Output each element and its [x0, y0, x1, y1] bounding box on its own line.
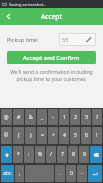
button[interactable]: © — [1, 127, 12, 144]
button[interactable]: 6 — [81, 127, 91, 144]
staticText: 0 — [70, 170, 73, 177]
button[interactable]: Edit pickup time — [84, 35, 93, 44]
button[interactable]: , — [15, 165, 24, 182]
button[interactable]: % — [35, 146, 45, 163]
button[interactable]: + — [48, 127, 58, 144]
button[interactable]: Accept and Confirm — [7, 51, 96, 64]
staticText: ( — [18, 132, 20, 139]
staticText: % — [38, 151, 43, 158]
staticText: ? — [96, 114, 99, 121]
staticText: _ — [41, 114, 44, 121]
staticText: 8 — [72, 151, 75, 158]
button[interactable]: Backspace — [90, 146, 102, 163]
staticText: 7 — [61, 151, 64, 158]
button[interactable]: * — [13, 146, 23, 163]
button[interactable]: 7 — [57, 146, 67, 163]
button[interactable]: Enter — [88, 165, 102, 182]
staticText: . — [59, 170, 61, 177]
button[interactable]: Shift — [1, 146, 12, 163]
button[interactable]: Back — [0, 8, 17, 25]
button[interactable]: # — [13, 109, 24, 125]
staticText: Accept and Confirm — [23, 54, 80, 62]
button[interactable]: 2 — [70, 109, 80, 125]
staticText: - — [81, 170, 83, 177]
button[interactable]: _ — [37, 109, 47, 125]
button[interactable]: 5 — [70, 127, 80, 144]
staticText: 4 — [63, 132, 66, 139]
staticText: # — [17, 114, 21, 121]
staticText: 55 — [62, 36, 69, 43]
button[interactable]: . — [55, 165, 65, 182]
button[interactable]: 4 — [59, 127, 69, 144]
staticText: 3 — [85, 114, 88, 121]
staticText: ) — [30, 132, 32, 139]
button[interactable]: ) — [25, 127, 36, 144]
button[interactable]: abc — [1, 165, 14, 182]
button[interactable]: & — [25, 109, 36, 125]
staticText: 6 — [85, 132, 88, 139]
button[interactable]: 0 — [66, 165, 76, 182]
staticText: We'll send a confirmation including pick… — [5, 69, 98, 83]
staticText: ! — [96, 132, 98, 139]
button[interactable]: : — [24, 146, 34, 163]
staticText: @ — [4, 114, 9, 121]
staticText: 9 — [83, 151, 86, 158]
button[interactable]: = — [37, 127, 47, 144]
staticText: Pickup time: — [7, 36, 39, 43]
staticText: * — [17, 151, 20, 158]
staticText: 2 — [74, 114, 77, 121]
staticText: abc — [3, 170, 12, 177]
staticText: Accept — [41, 12, 62, 21]
button[interactable]: 55 — [59, 33, 96, 46]
button[interactable]: ! — [92, 127, 102, 144]
staticText: = — [41, 132, 44, 139]
staticText: 5 — [74, 132, 77, 139]
staticText: + — [52, 132, 55, 139]
staticText: Saving screenshot… — [9, 2, 47, 7]
staticText: © — [4, 132, 9, 139]
button[interactable]: / — [46, 146, 56, 163]
staticText: , — [19, 170, 21, 177]
staticText: : — [28, 151, 30, 158]
button[interactable]: ( — [13, 127, 24, 144]
staticText: 1 — [63, 114, 66, 121]
staticText: & — [29, 114, 33, 121]
staticText: - — [52, 114, 54, 121]
button[interactable]: - — [48, 109, 58, 125]
staticText: / — [50, 151, 52, 158]
button[interactable]: 1 — [59, 109, 69, 125]
button[interactable]: @ — [1, 109, 12, 125]
button[interactable]: 8 — [68, 146, 78, 163]
button[interactable]: 9 — [79, 146, 89, 163]
button[interactable]: ? — [92, 109, 102, 125]
button[interactable]: 3 — [81, 109, 91, 125]
button[interactable]: - — [77, 165, 87, 182]
